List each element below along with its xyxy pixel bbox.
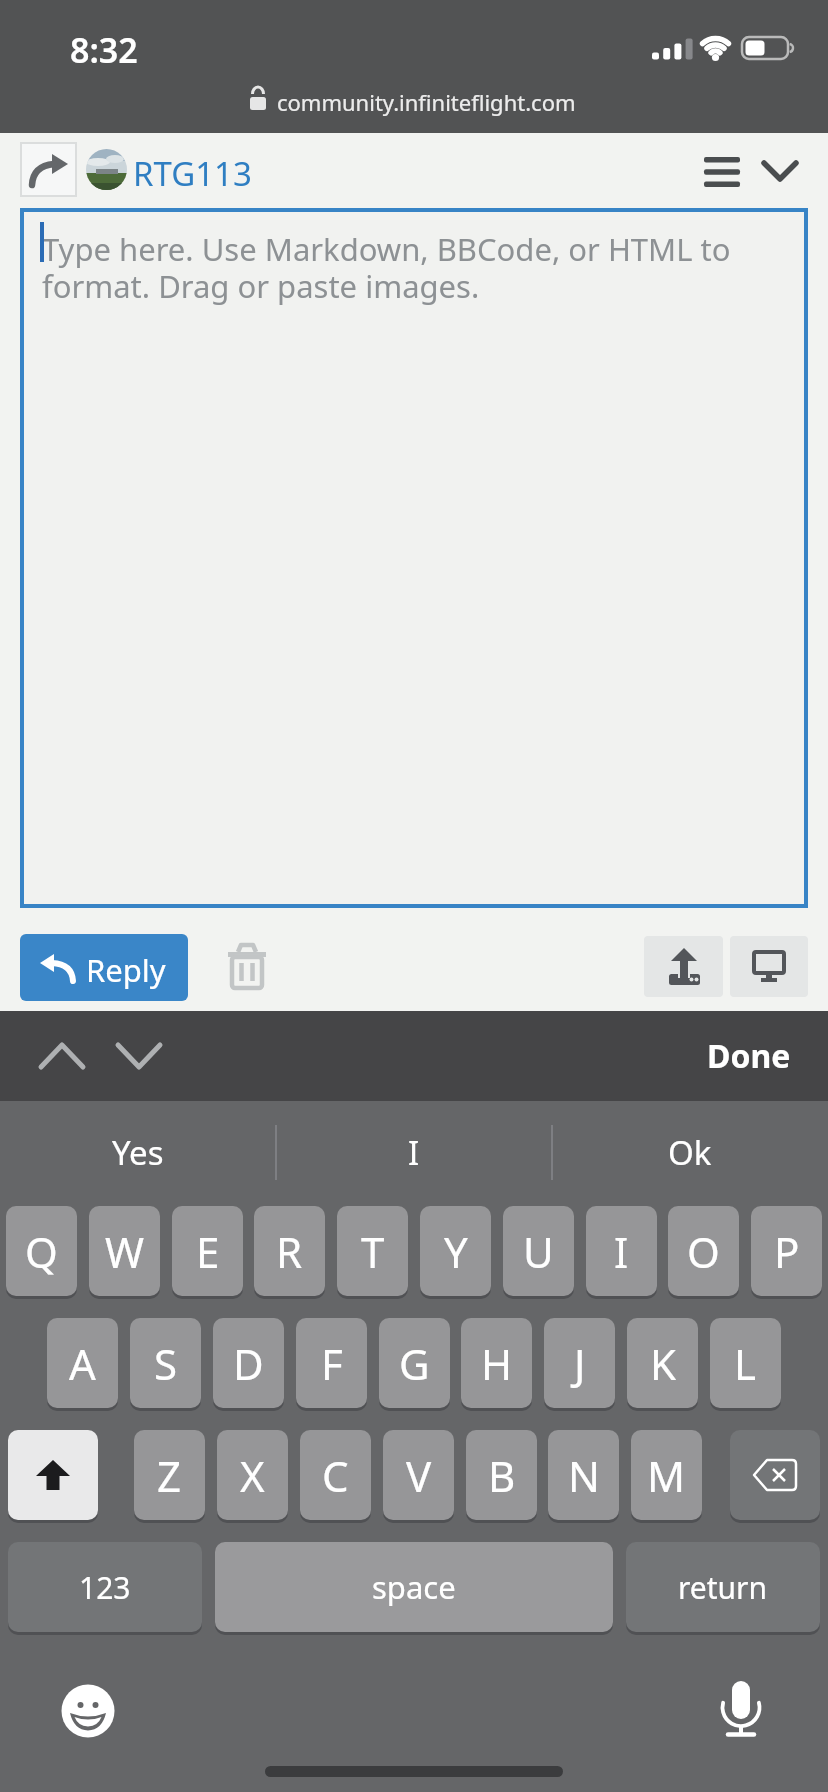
button[interactable]: Type here. Use Markdown, BBCode, or HTML… — [20, 208, 808, 908]
button[interactable] — [107, 1025, 171, 1087]
staticText: U — [523, 1223, 554, 1280]
button[interactable] — [694, 150, 750, 194]
staticText: E — [196, 1223, 220, 1280]
button[interactable]: G — [379, 1318, 450, 1408]
button[interactable]: RTG113 — [133, 151, 252, 196]
button[interactable]: V — [383, 1430, 454, 1520]
button[interactable] — [221, 936, 273, 994]
staticText: L — [734, 1335, 757, 1392]
staticText: B — [488, 1447, 516, 1504]
staticText: P — [774, 1223, 800, 1280]
button[interactable]: U — [503, 1206, 574, 1296]
staticText: Q — [25, 1223, 58, 1280]
staticText: C — [322, 1447, 349, 1504]
staticText: 123 — [79, 1567, 131, 1608]
button[interactable]: N — [548, 1430, 619, 1520]
staticText: Yes — [112, 1130, 164, 1175]
button[interactable]: space — [215, 1542, 613, 1632]
staticText: R — [276, 1223, 303, 1280]
button[interactable] — [711, 1676, 771, 1744]
button[interactable]: X — [217, 1430, 288, 1520]
staticText: return — [678, 1567, 768, 1608]
button[interactable]: 123 — [8, 1542, 202, 1632]
staticText: H — [481, 1335, 513, 1392]
staticText: A — [69, 1335, 96, 1392]
button[interactable]: C — [300, 1430, 371, 1520]
button[interactable]: F — [296, 1318, 367, 1408]
button[interactable]: W — [89, 1206, 160, 1296]
staticText: Done — [707, 1034, 791, 1078]
button[interactable]: P — [751, 1206, 822, 1296]
staticText: V — [406, 1447, 432, 1504]
button[interactable] — [20, 142, 77, 197]
button[interactable] — [58, 1681, 118, 1741]
staticText: Reply — [86, 949, 166, 991]
button[interactable]: R — [254, 1206, 325, 1296]
button[interactable]: B — [466, 1430, 537, 1520]
staticText: W — [105, 1223, 145, 1280]
staticText: I — [408, 1130, 420, 1175]
button[interactable]: O — [668, 1206, 739, 1296]
button[interactable]: I — [276, 1101, 552, 1204]
button[interactable]: K — [627, 1318, 698, 1408]
staticText: I — [614, 1223, 629, 1280]
button[interactable]: Y — [420, 1206, 491, 1296]
staticText: 8:32 — [70, 27, 138, 73]
staticText: G — [399, 1335, 430, 1392]
staticText: Y — [444, 1223, 468, 1280]
button[interactable] — [8, 1430, 98, 1520]
button[interactable]: L — [710, 1318, 781, 1408]
staticText: D — [233, 1335, 264, 1392]
button[interactable]: Ok — [552, 1101, 828, 1204]
staticText: K — [650, 1335, 676, 1392]
button[interactable]: Done — [690, 1025, 808, 1087]
button[interactable]: Z — [134, 1430, 205, 1520]
button[interactable]: Yes — [0, 1101, 276, 1204]
staticText: J — [574, 1335, 586, 1392]
button[interactable] — [644, 936, 723, 997]
staticText: Z — [157, 1447, 182, 1504]
button[interactable]: return — [626, 1542, 820, 1632]
button[interactable]: A — [47, 1318, 118, 1408]
staticText: space — [372, 1566, 456, 1608]
staticText: N — [568, 1447, 600, 1504]
button[interactable]: H — [461, 1318, 532, 1408]
staticText: O — [687, 1223, 720, 1280]
button[interactable]: E — [172, 1206, 243, 1296]
button[interactable] — [752, 150, 808, 194]
button[interactable]: Reply — [20, 934, 188, 1001]
button[interactable] — [730, 936, 808, 997]
button[interactable]: M — [631, 1430, 702, 1520]
button[interactable]: T — [337, 1206, 408, 1296]
staticText: community.infiniteflight.com — [277, 87, 576, 117]
button[interactable]: I — [586, 1206, 657, 1296]
staticText: M — [647, 1447, 686, 1504]
staticText: X — [240, 1447, 265, 1504]
staticText: S — [154, 1335, 178, 1392]
staticText: Type here. Use Markdown, BBCode, or HTML… — [42, 228, 731, 307]
button[interactable]: J — [544, 1318, 615, 1408]
button[interactable]: D — [213, 1318, 284, 1408]
staticText: F — [321, 1335, 343, 1392]
button[interactable] — [30, 1025, 94, 1087]
button[interactable] — [86, 149, 127, 190]
staticText: Ok — [668, 1130, 712, 1175]
button[interactable]: Q — [6, 1206, 77, 1296]
staticText: T — [361, 1223, 385, 1280]
button[interactable]: S — [130, 1318, 201, 1408]
button[interactable] — [730, 1430, 820, 1520]
